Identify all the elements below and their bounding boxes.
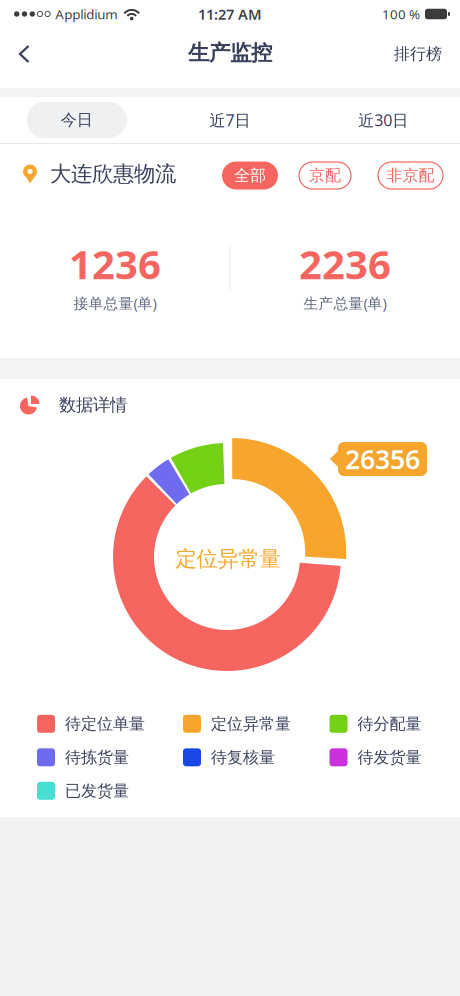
staticText: 定位异常量	[175, 546, 280, 572]
staticText: 京配	[309, 166, 341, 185]
staticText: 2236	[299, 237, 391, 290]
staticText: 待定位单量	[65, 714, 145, 734]
staticText: 今日	[61, 110, 93, 130]
staticText: 待发货量	[357, 747, 421, 767]
staticText: 全部	[234, 166, 266, 185]
button[interactable]: 今日	[0, 97, 153, 143]
staticText: 生产监控	[188, 40, 272, 66]
staticText: 已发货量	[65, 781, 129, 801]
button[interactable]: Back	[0, 32, 39, 76]
staticText: 26356	[345, 441, 420, 477]
staticText: 11:27 AM	[198, 4, 262, 24]
staticText: 排行榜	[394, 44, 442, 64]
button[interactable]: 排行榜	[394, 32, 460, 76]
staticText: 100 %	[382, 5, 420, 23]
button[interactable]: 近7日	[153, 97, 307, 143]
staticText: 1236	[69, 237, 161, 290]
staticText: 大连欣惠物流	[50, 161, 176, 187]
staticText: 近7日	[209, 109, 250, 131]
staticText: 待拣货量	[65, 747, 129, 767]
staticText: 接单总量(单)	[73, 293, 156, 313]
staticText: 非京配	[386, 166, 434, 185]
staticText: 数据详情	[59, 394, 127, 416]
staticText: 定位异常量	[211, 714, 291, 734]
staticText: 生产总量(单)	[303, 293, 386, 313]
button[interactable]: 京配	[278, 160, 351, 187]
button[interactable]: 非京配	[351, 160, 460, 187]
staticText: Applidium	[55, 5, 117, 23]
button[interactable]: 近30日	[307, 97, 460, 143]
staticText: 待复核量	[211, 747, 275, 767]
staticText: 待分配量	[357, 714, 421, 734]
staticText: 近30日	[358, 109, 408, 131]
button[interactable]: 全部	[222, 160, 278, 188]
